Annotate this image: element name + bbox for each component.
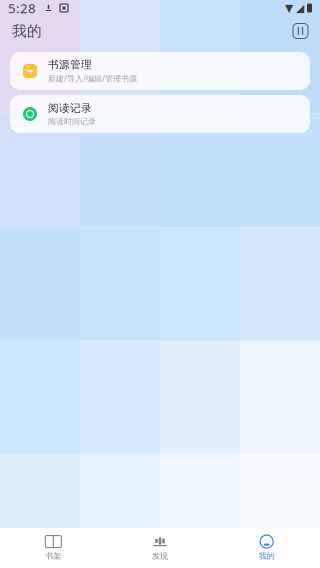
staticText: 阅读记录 [48,101,92,115]
button[interactable]: 阅读记录 [10,95,310,133]
staticText: 5:28 [8,0,36,17]
staticText: 我的 [12,22,42,40]
staticText: ◢ [296,2,304,14]
button[interactable]: 设置 [293,23,308,38]
staticText: 书架 [45,551,61,561]
staticText: 阅读时间记录 [48,117,96,126]
button[interactable]: 书架 [0,528,107,568]
staticText: 发现 [152,551,168,561]
staticText: 书源管理 [48,58,92,71]
staticText: ▼ [285,2,293,14]
staticText: 新建/导入/编辑/管理书源 [48,73,137,84]
button[interactable]: 我的 [213,528,320,568]
button[interactable]: 发现 [107,528,213,568]
staticText: 我的 [259,551,275,561]
button[interactable]: 书源管理 [10,52,310,90]
